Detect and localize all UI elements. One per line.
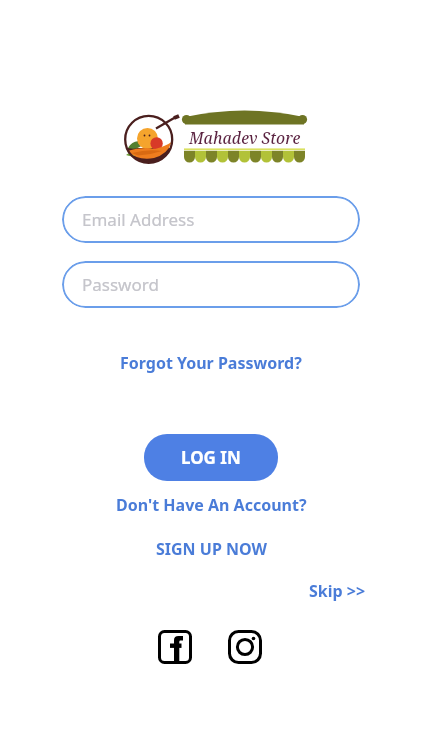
button[interactable]: Forgot Your Password? bbox=[120, 352, 302, 374]
button[interactable]: Skip >> bbox=[309, 580, 366, 602]
staticText: Password bbox=[82, 273, 159, 296]
button[interactable]: Email Address bbox=[62, 196, 360, 243]
button[interactable]: SIGN UP NOW bbox=[156, 538, 267, 560]
staticText: LOG IN bbox=[181, 446, 241, 469]
staticText: Mahadev Store bbox=[189, 127, 301, 148]
button[interactable] bbox=[158, 630, 192, 664]
button[interactable]: Password bbox=[62, 261, 360, 308]
button[interactable] bbox=[228, 630, 262, 664]
button[interactable]: Don't Have An Account? bbox=[116, 494, 307, 516]
staticText: Email Address bbox=[82, 208, 195, 231]
button[interactable]: LOG IN bbox=[144, 434, 278, 481]
